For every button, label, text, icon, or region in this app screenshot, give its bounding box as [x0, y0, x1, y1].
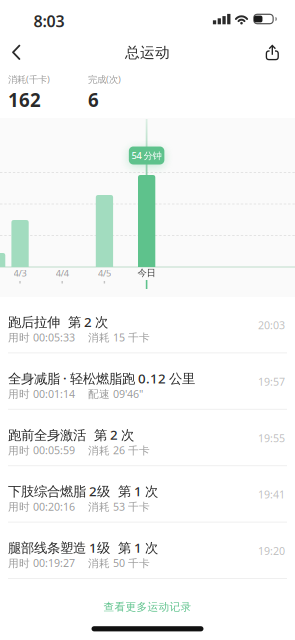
staticText: 腿部线条塑造 1级 第 1 次	[8, 539, 158, 556]
button[interactable]: 跑前全身激活 第 2 次	[0, 410, 295, 466]
staticText: 全身减脂 · 轻松燃脂跑 0.12 公里	[8, 369, 195, 387]
button[interactable]: 分享	[259, 32, 286, 66]
staticText: 今日	[138, 267, 156, 279]
button[interactable]: 下肢综合燃脂 2级 第 1 次	[0, 466, 295, 523]
staticText: 下肢综合燃脂 2级 第 1 次	[8, 482, 158, 500]
staticText: 配速 09'46"	[88, 387, 143, 401]
staticText: 6	[88, 87, 99, 112]
staticText: 消耗 15 千卡	[88, 330, 150, 344]
staticText: 162	[8, 87, 41, 112]
staticText: 用时 00:01:14	[8, 387, 75, 401]
staticText: 4/3	[13, 267, 26, 279]
button[interactable]: 全身减脂 · 轻松燃脂跑 0.12 公里	[0, 353, 295, 410]
staticText: 消耗 50 千卡	[88, 556, 150, 570]
staticText: 19:55	[258, 431, 285, 445]
staticText: 19:41	[258, 487, 285, 501]
staticText: 54 分钟	[132, 149, 162, 162]
button[interactable]: 腿部线条塑造 1级 第 1 次	[0, 523, 295, 579]
staticText: 19:20	[258, 544, 285, 558]
staticText: 4/5	[98, 267, 111, 279]
staticText: 查看更多运动记录	[103, 600, 191, 613]
staticText: 用时 00:20:16	[8, 499, 75, 514]
staticText: 用时 00:19:27	[8, 556, 75, 570]
staticText: 消耗(千卡)	[8, 73, 50, 85]
staticText: 总运动	[125, 43, 170, 61]
staticText: 跑后拉伸 第 2 次	[8, 313, 108, 331]
button[interactable]: 跑后拉伸 第 2 次	[0, 297, 295, 353]
staticText: 完成(次)	[88, 73, 121, 85]
staticText: 跑前全身激活 第 2 次	[8, 426, 134, 443]
staticText: 8:03	[33, 10, 64, 32]
button[interactable]: 查看更多运动记录	[93, 594, 201, 619]
staticText: 消耗 53 千卡	[88, 499, 150, 514]
staticText: 消耗 26 千卡	[88, 443, 150, 457]
button[interactable]: 返回	[0, 32, 36, 66]
staticText: 用时 00:05:33	[8, 330, 75, 344]
staticText: 19:57	[258, 374, 285, 389]
staticText: 20:03	[258, 318, 285, 332]
staticText: 4/4	[56, 267, 69, 279]
staticText: 用时 00:05:59	[8, 443, 75, 457]
